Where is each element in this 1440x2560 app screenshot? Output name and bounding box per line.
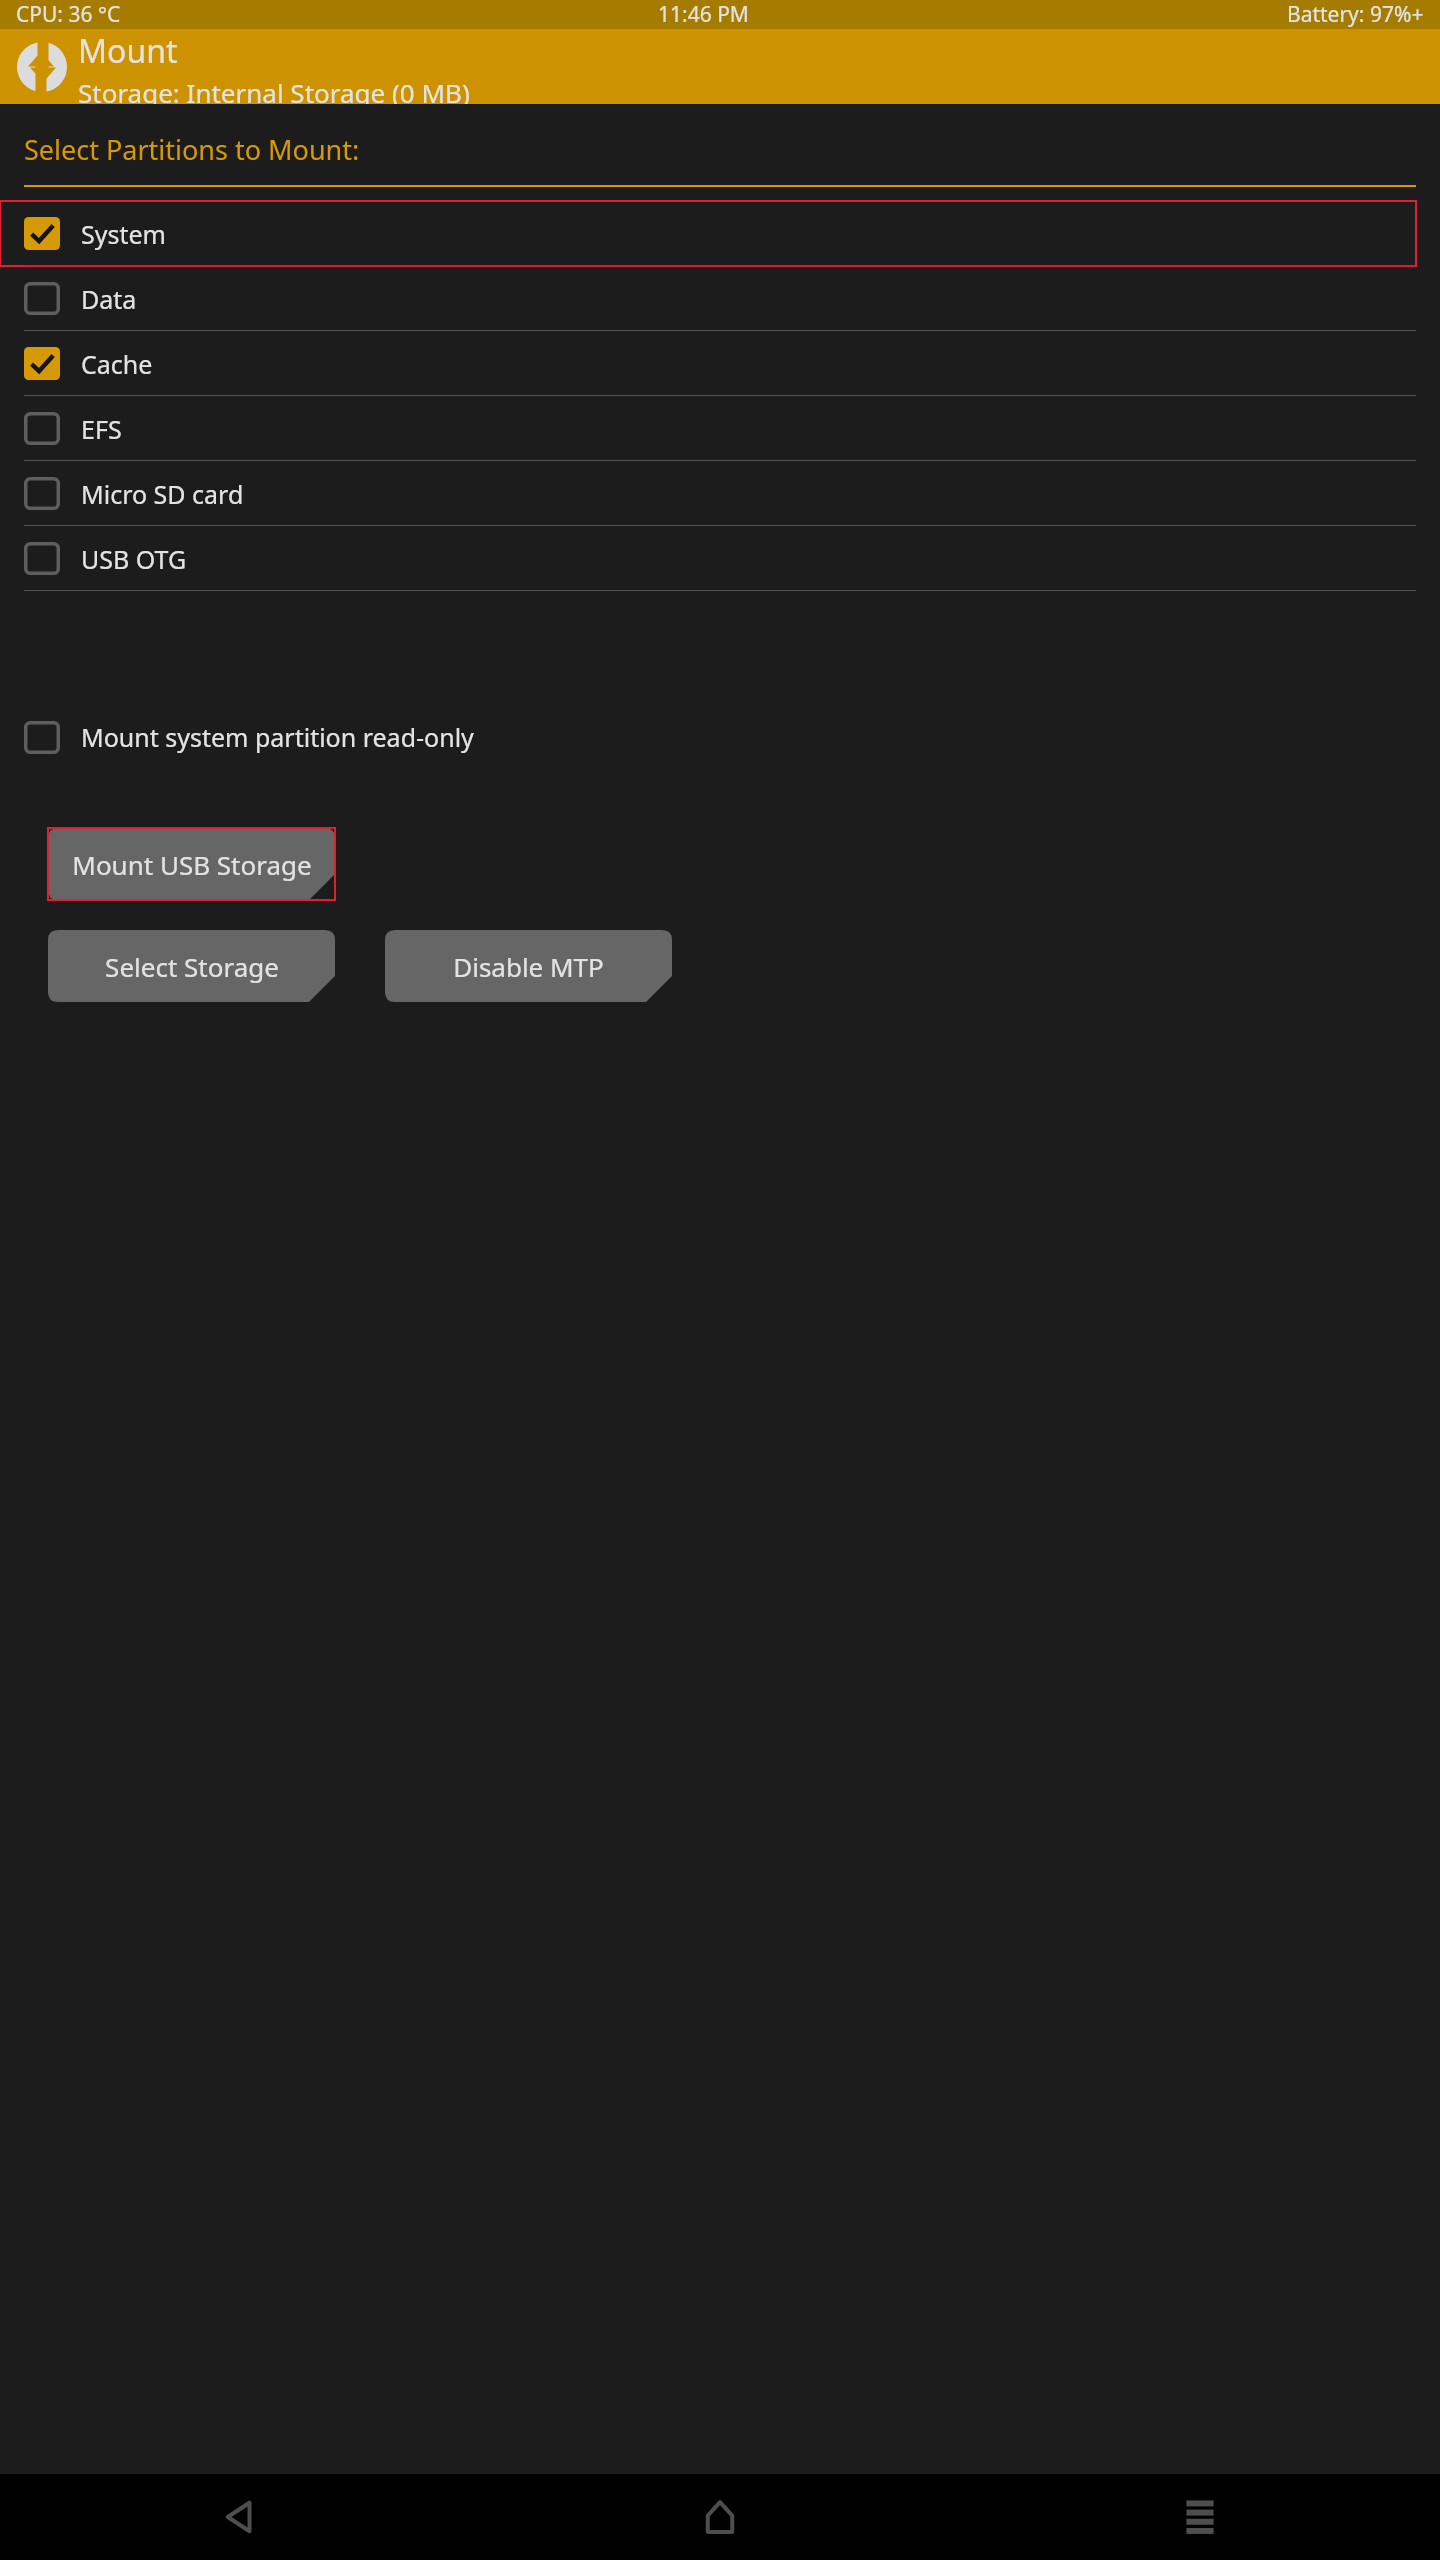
staticText: Cache — [81, 347, 153, 381]
button[interactable]: Mount USB Storage — [48, 828, 335, 900]
staticText: Disable MTP — [453, 949, 604, 984]
button[interactable]: Back — [0, 2474, 480, 2560]
button[interactable]: Disable MTP — [385, 930, 672, 1002]
staticText: System — [81, 217, 166, 251]
staticText: USB OTG — [81, 542, 187, 576]
staticText: CPU: 36 °C — [16, 0, 121, 29]
staticText: Mount system partition read-only — [81, 720, 474, 754]
button[interactable]: Home — [480, 2474, 960, 2560]
button[interactable]: Mount system partition read-only — [0, 709, 1440, 765]
staticText: Data — [81, 282, 137, 316]
staticText: Storage: Internal Storage (0 MB) — [78, 75, 470, 104]
button[interactable]: EFS — [0, 396, 1440, 461]
staticText: Select Partitions to Mount: — [24, 131, 360, 168]
staticText: Mount USB Storage — [72, 847, 312, 882]
staticText: EFS — [81, 412, 122, 446]
button[interactable]: Data — [0, 266, 1440, 331]
button[interactable]: Select Storage — [48, 930, 335, 1002]
staticText: Select Storage — [105, 949, 279, 984]
staticText: Micro SD card — [81, 477, 244, 511]
button[interactable]: USB OTG — [0, 526, 1440, 591]
button[interactable]: Menu — [960, 2474, 1440, 2560]
staticText: Battery: 97%+ — [1287, 0, 1424, 29]
staticText: 11:46 PM — [658, 0, 749, 29]
button[interactable]: Micro SD card — [0, 461, 1440, 526]
button[interactable]: System — [0, 201, 1440, 266]
button[interactable]: Cache — [0, 331, 1440, 396]
staticText: Mount — [78, 29, 178, 73]
